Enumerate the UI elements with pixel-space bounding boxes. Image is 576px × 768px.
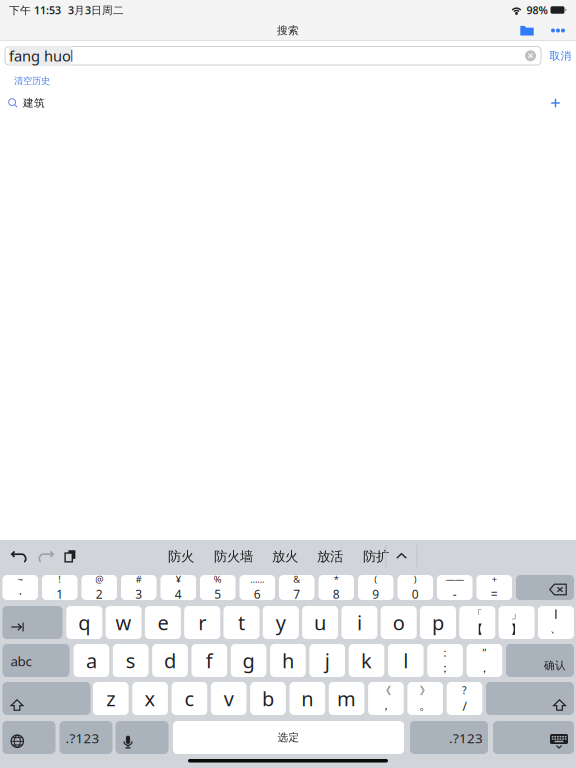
button[interactable]: 防火 xyxy=(166,549,196,564)
button[interactable]: u xyxy=(302,606,338,639)
button[interactable]: .?123 xyxy=(410,721,488,754)
button[interactable]: * xyxy=(318,575,354,600)
staticText: 确认 xyxy=(544,659,566,672)
button[interactable]: c xyxy=(172,682,207,715)
button[interactable]: t xyxy=(223,606,259,639)
button[interactable]: Add xyxy=(545,95,566,111)
button[interactable]: p xyxy=(420,606,456,639)
button[interactable] xyxy=(2,606,62,639)
button[interactable]: o xyxy=(381,606,417,639)
button[interactable]: @ xyxy=(81,575,117,600)
button[interactable] xyxy=(516,575,574,600)
staticText: ； xyxy=(439,661,451,675)
button[interactable]: More xyxy=(545,20,571,41)
staticText: .?123 xyxy=(65,729,99,747)
staticText: 防火 xyxy=(168,548,194,565)
staticText: 》 xyxy=(420,684,431,697)
button[interactable]: Folders xyxy=(514,20,540,41)
button[interactable] xyxy=(115,721,168,754)
staticText: 放活 xyxy=(317,548,343,565)
button[interactable]: 防扩 xyxy=(361,549,391,564)
button[interactable]: e xyxy=(145,606,181,639)
staticText: 【 xyxy=(471,622,483,637)
button[interactable]: ! xyxy=(42,575,77,600)
button[interactable]: ( xyxy=(358,575,393,600)
staticText: ， xyxy=(380,698,392,713)
staticText: 4 xyxy=(175,586,182,602)
button[interactable]: ? xyxy=(447,682,482,715)
staticText: % xyxy=(214,573,222,585)
staticText: @ xyxy=(95,573,103,585)
button[interactable]: ¥ xyxy=(160,575,196,600)
staticText: 3月3日周二 xyxy=(68,3,124,17)
button[interactable]: : xyxy=(427,644,463,677)
staticText: ) xyxy=(414,573,417,585)
button[interactable]: 确认 xyxy=(506,644,574,677)
button[interactable]: d xyxy=(152,644,188,677)
button[interactable]: Paste xyxy=(64,549,76,563)
button[interactable]: + xyxy=(476,575,512,600)
button[interactable]: k xyxy=(349,644,384,677)
staticText: ~ xyxy=(18,573,23,585)
button[interactable]: r xyxy=(184,606,220,639)
staticText: d xyxy=(164,647,176,674)
staticText: - xyxy=(453,586,457,602)
button[interactable]: y xyxy=(263,606,299,639)
button[interactable]: s xyxy=(113,644,148,677)
button[interactable]: 放活 xyxy=(315,549,345,564)
button[interactable]: j xyxy=(309,644,345,677)
button[interactable]: v xyxy=(211,682,246,715)
button[interactable] xyxy=(493,721,574,754)
button[interactable]: Undo xyxy=(10,549,28,563)
button[interactable]: 清空历史 xyxy=(14,75,50,87)
button[interactable] xyxy=(2,721,55,754)
staticText: .?123 xyxy=(449,729,483,747)
button[interactable]: abc xyxy=(2,644,69,677)
button[interactable]: —— xyxy=(437,575,472,600)
button[interactable]: % xyxy=(200,575,235,600)
button[interactable]: m xyxy=(329,682,364,715)
button[interactable]: i xyxy=(341,606,377,639)
button[interactable]: # xyxy=(121,575,156,600)
button[interactable]: …… xyxy=(239,575,275,600)
staticText: 」 xyxy=(511,608,522,621)
button[interactable]: 》 xyxy=(407,682,443,715)
button[interactable]: w xyxy=(106,606,142,639)
staticText: fang huo xyxy=(9,46,71,65)
staticText: c xyxy=(184,685,194,712)
button[interactable]: .?123 xyxy=(59,721,112,754)
button[interactable]: & xyxy=(279,575,314,600)
button[interactable]: 取消 xyxy=(547,47,573,65)
button[interactable]: x xyxy=(132,682,168,715)
button[interactable]: 选定 xyxy=(173,721,404,754)
staticText: : xyxy=(444,645,447,660)
button[interactable]: 「 xyxy=(459,606,495,639)
button[interactable]: 、 xyxy=(538,606,574,639)
staticText: f xyxy=(206,647,213,674)
button[interactable]: f xyxy=(191,644,227,677)
button[interactable]: Expand candidates xyxy=(396,553,407,559)
button[interactable]: Redo xyxy=(37,549,55,563)
button[interactable]: 《 xyxy=(368,682,404,715)
staticText: 防扩 xyxy=(363,548,389,565)
button[interactable]: a xyxy=(74,644,109,677)
button[interactable]: ~ xyxy=(2,575,38,600)
staticText: 2 xyxy=(96,586,103,602)
staticText: j xyxy=(325,647,330,674)
button[interactable]: 放火 xyxy=(270,549,300,564)
button[interactable]: 防火墙 xyxy=(211,549,256,564)
button[interactable] xyxy=(486,682,574,715)
button[interactable]: ) xyxy=(397,575,433,600)
button[interactable]: 」 xyxy=(499,606,535,639)
button[interactable]: g xyxy=(231,644,266,677)
staticText: 0 xyxy=(412,586,419,602)
staticText: e xyxy=(157,609,168,636)
button[interactable] xyxy=(2,682,90,715)
button[interactable]: q xyxy=(66,606,102,639)
button[interactable]: n xyxy=(289,682,325,715)
button[interactable]: z xyxy=(93,682,129,715)
button[interactable]: h xyxy=(270,644,306,677)
button[interactable]: b xyxy=(250,682,286,715)
button[interactable]: ” xyxy=(467,644,502,677)
button[interactable]: l xyxy=(388,644,424,677)
